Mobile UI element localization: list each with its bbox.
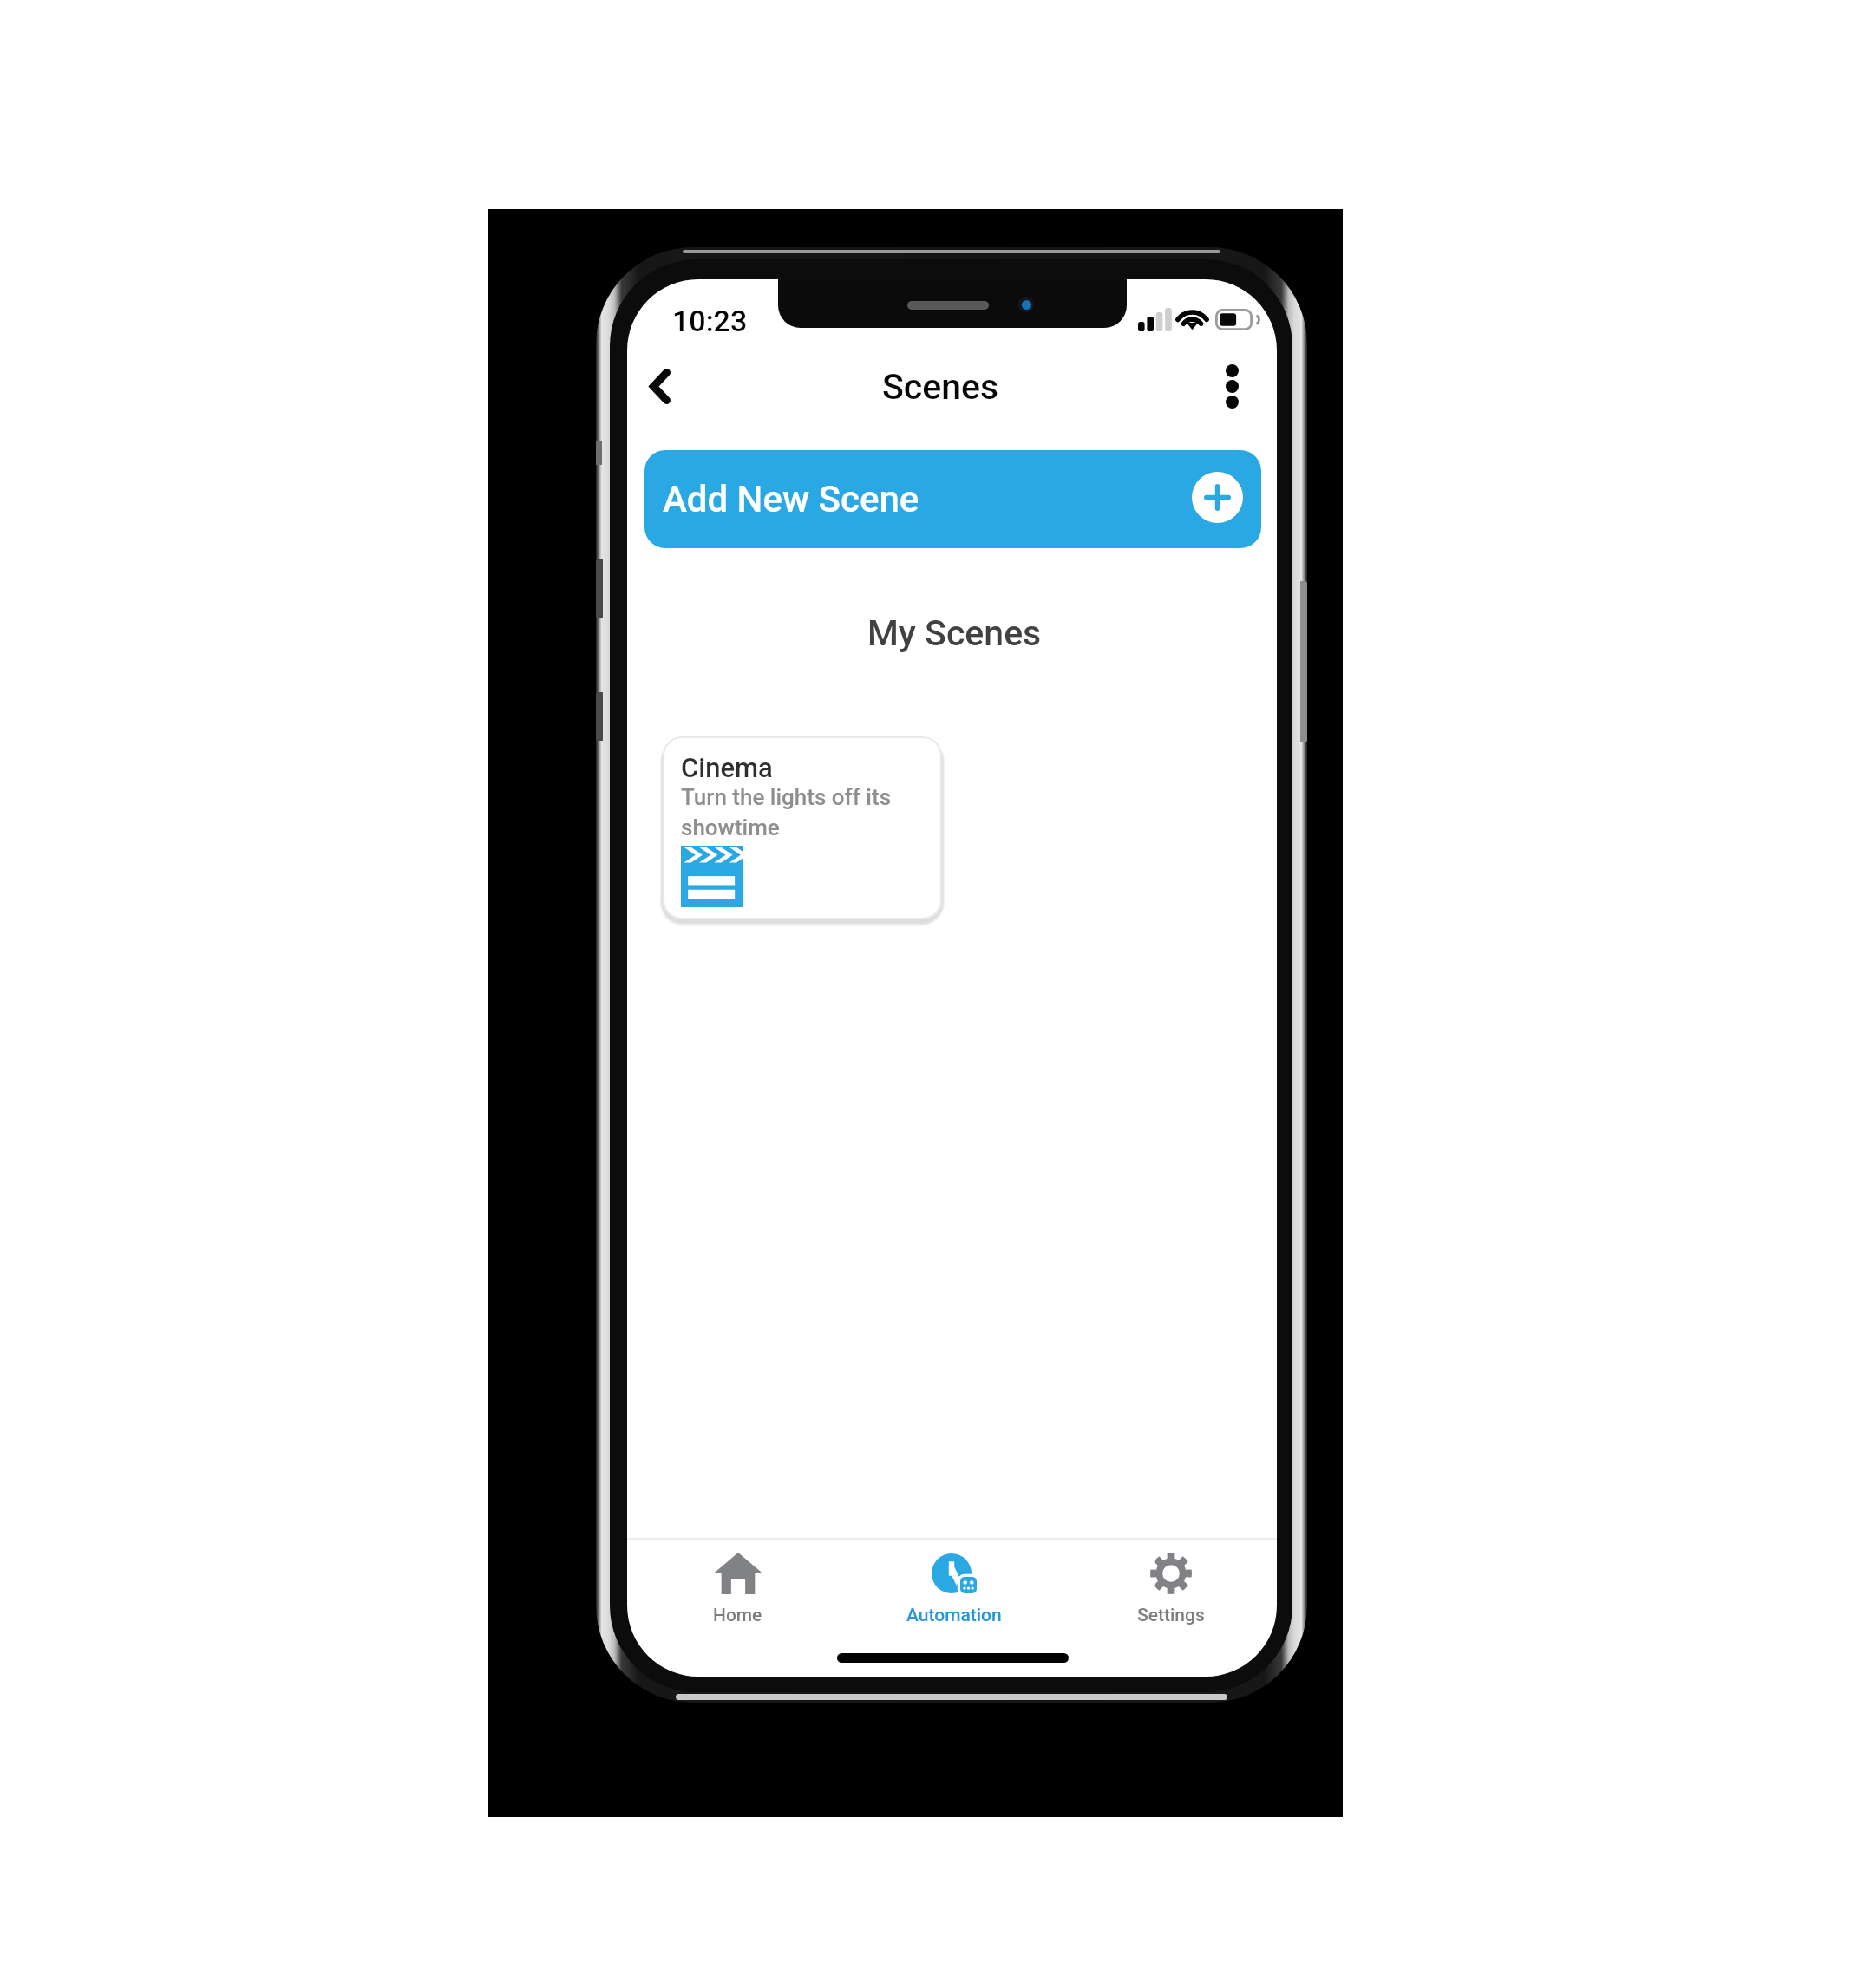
staticText: Cinema	[681, 752, 773, 783]
button[interactable]: Add scene	[1192, 472, 1243, 523]
staticText: Settings	[1137, 1605, 1205, 1626]
staticText: Automation	[906, 1605, 1002, 1626]
staticText: 10:23	[672, 304, 748, 338]
staticText: Turn the lights off its showtime	[681, 784, 892, 840]
button[interactable]: Settings	[1063, 1540, 1277, 1626]
button[interactable]: Add New Scene	[644, 450, 1261, 548]
staticText: Add New Scene	[663, 478, 919, 520]
staticText: Home	[713, 1605, 762, 1626]
button[interactable]: Automation	[846, 1540, 1063, 1626]
button[interactable]: Home	[630, 1540, 846, 1626]
button[interactable]: More options	[1190, 344, 1273, 428]
staticText: Scenes	[882, 366, 999, 408]
button[interactable]: Cinema	[663, 736, 942, 919]
staticText: My Scenes	[867, 612, 1042, 654]
button[interactable]: Back	[627, 344, 702, 428]
